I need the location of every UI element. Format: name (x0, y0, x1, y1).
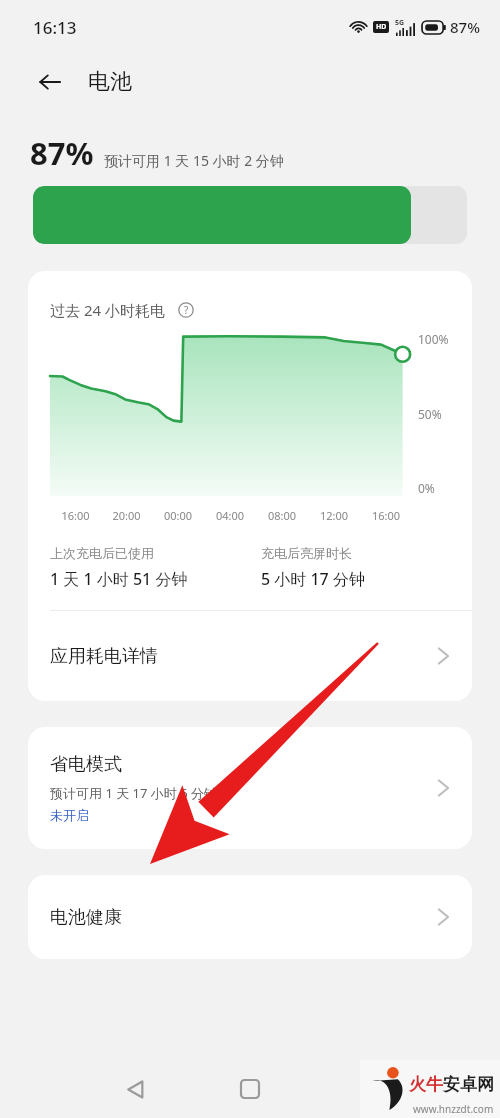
staticText: 过去 24 小时耗电 (50, 300, 165, 320)
staticText: 电池 (88, 68, 132, 96)
button[interactable]: Back (28, 60, 72, 104)
staticText: 上次充电后已使用 (50, 545, 154, 561)
staticText: 充电后亮屏时长 (261, 545, 352, 561)
staticText: 火牛 (409, 1074, 443, 1095)
staticText: 0% (418, 480, 435, 496)
staticText: 50% (418, 406, 442, 422)
button[interactable]: 应用耗电详情 (28, 611, 472, 701)
button[interactable]: 电池健康 (28, 875, 472, 959)
staticText: 预计可用 1 天 15 小时 2 分钟 (104, 151, 284, 170)
staticText: 5 小时 17 分钟 (261, 568, 365, 590)
staticText: 16:00 (50, 508, 101, 523)
staticText: 04:00 (204, 508, 256, 523)
staticText: 16:13 (33, 16, 77, 39)
staticText: HD (376, 22, 387, 32)
staticText: 未开启 (50, 807, 89, 823)
staticText: 电池健康 (50, 906, 437, 929)
staticText: ? (184, 303, 189, 317)
button[interactable]: 省电模式 (28, 727, 472, 849)
staticText: 20:00 (101, 508, 152, 523)
staticText: 16:00 (360, 508, 412, 523)
staticText: 1 天 1 小时 51 分钟 (50, 568, 188, 590)
staticText: 省电模式 (50, 753, 122, 776)
staticText: 08:00 (256, 508, 308, 523)
button[interactable]: Help (173, 297, 199, 323)
staticText: 预计可用 1 天 17 小时 6 分钟 (50, 784, 218, 802)
staticText: www.hnzzdt.com (413, 1102, 494, 1116)
button[interactable]: Back (112, 1066, 158, 1112)
button[interactable]: Home (227, 1066, 273, 1112)
staticText: 87% (30, 132, 94, 174)
staticText: 12:00 (308, 508, 360, 523)
staticText: 87% (450, 17, 480, 37)
staticText: 安卓网 (443, 1074, 494, 1095)
staticText: 5G (395, 18, 405, 28)
staticText: 应用耗电详情 (50, 645, 437, 668)
staticText: 00:00 (152, 508, 204, 523)
staticText: 100% (418, 331, 449, 347)
